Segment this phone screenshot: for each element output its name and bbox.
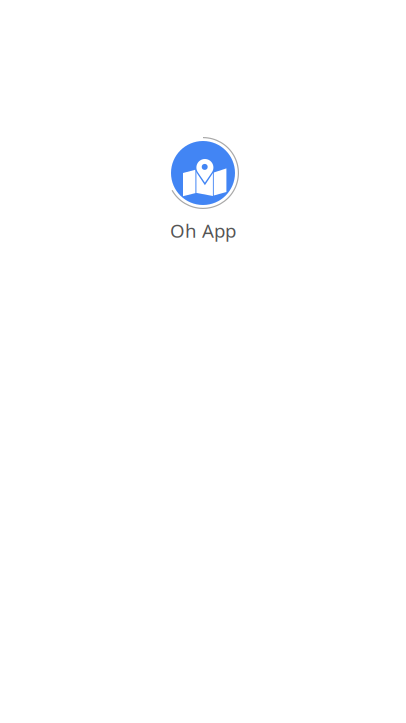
staticText: Oh App	[170, 218, 236, 243]
